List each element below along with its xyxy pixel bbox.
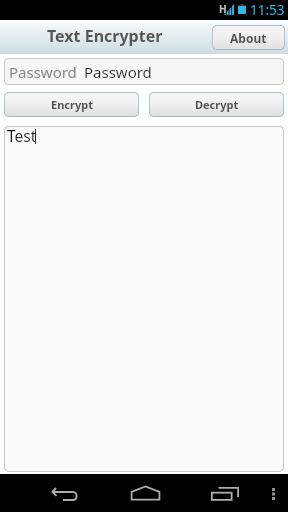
button[interactable]: Encrypt	[4, 92, 139, 117]
staticText: Password	[84, 62, 152, 82]
staticText: Test	[7, 126, 37, 146]
staticText: 11:53	[250, 1, 285, 19]
staticText: Decrypt	[195, 97, 239, 112]
button[interactable]: Test	[4, 126, 284, 472]
staticText: H	[219, 2, 227, 16]
staticText: Password	[9, 62, 77, 82]
button[interactable]: About	[212, 25, 285, 50]
button[interactable]: Home	[124, 480, 166, 506]
staticText: Text Encrypter	[47, 25, 163, 47]
button[interactable]: Recent apps	[205, 480, 245, 506]
staticText: About	[230, 30, 267, 46]
staticText: Encrypt	[51, 97, 93, 112]
button[interactable]: Decrypt	[149, 92, 284, 117]
button[interactable]: Password	[4, 58, 284, 85]
button[interactable]: Back	[44, 480, 84, 506]
button[interactable]: More options	[262, 481, 284, 507]
